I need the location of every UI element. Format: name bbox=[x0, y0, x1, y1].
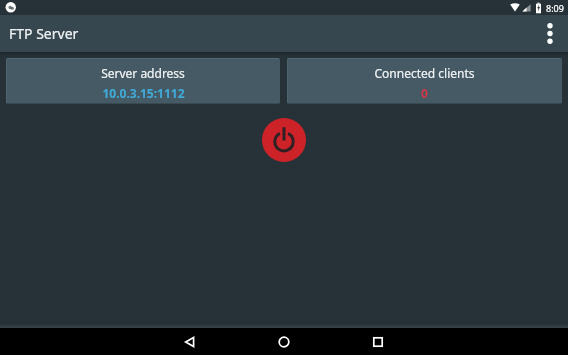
staticText: FTP Server bbox=[9, 24, 79, 43]
button[interactable]: Recents bbox=[342, 328, 414, 355]
staticText: 8:09 bbox=[546, 2, 564, 14]
button[interactable]: More options bbox=[532, 15, 568, 52]
button[interactable]: Server address bbox=[6, 58, 280, 104]
button[interactable]: Start server bbox=[262, 118, 306, 162]
staticText: Server address bbox=[101, 65, 185, 81]
button[interactable]: Back bbox=[154, 328, 226, 355]
button[interactable]: Connected clients bbox=[287, 58, 562, 104]
staticText: Connected clients bbox=[374, 65, 475, 81]
button[interactable]: Home bbox=[248, 328, 320, 355]
staticText: 10.0.3.15:1112 bbox=[102, 85, 185, 101]
staticText: 0 bbox=[421, 85, 428, 101]
